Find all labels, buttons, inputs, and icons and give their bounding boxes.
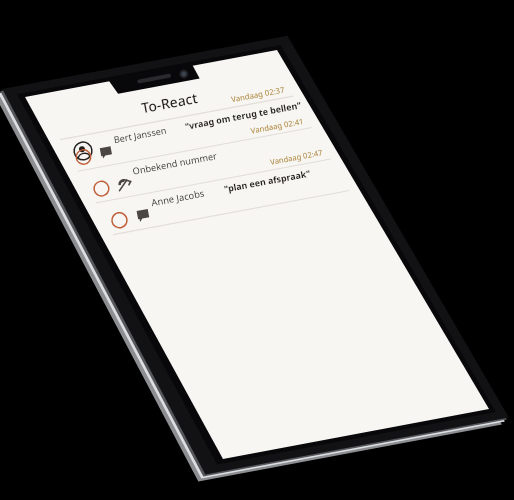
- other: To-React call list on phone: [0, 0, 514, 500]
- button[interactable]: [0, 0, 514, 500]
